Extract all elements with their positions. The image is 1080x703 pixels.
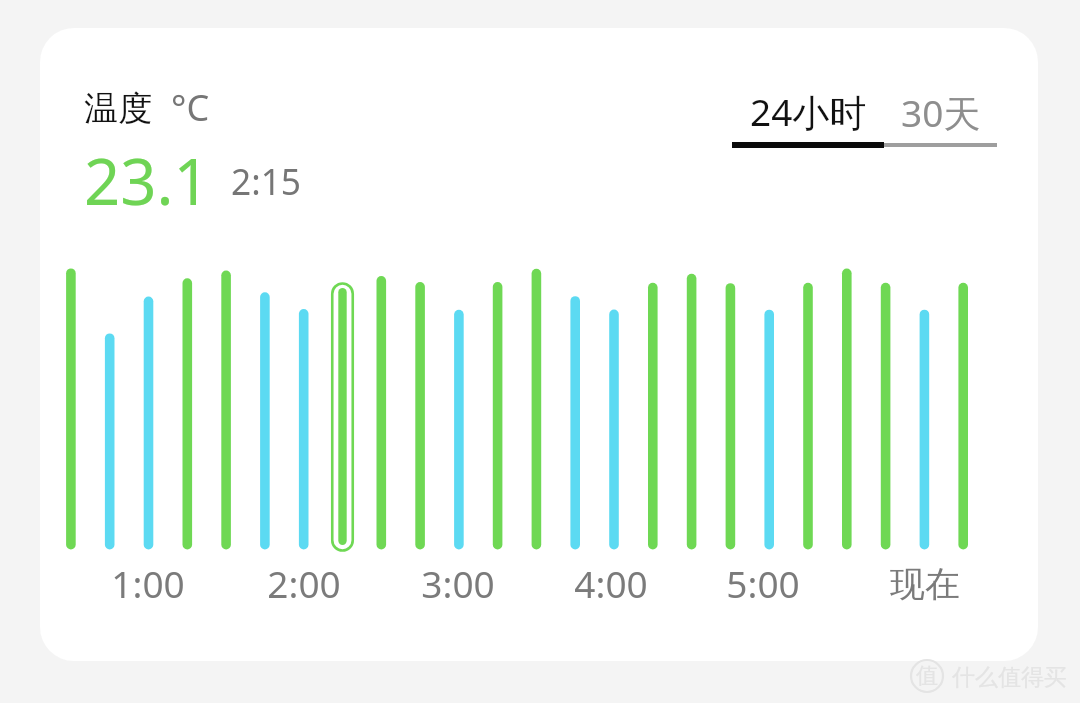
staticText: 24小时 <box>750 86 867 137</box>
button[interactable]: Temperature sample <box>324 262 362 554</box>
button[interactable]: Temperature sample <box>595 262 633 554</box>
button[interactable]: Temperature sample <box>285 262 323 554</box>
button[interactable]: Temperature sample <box>168 262 206 554</box>
button[interactable]: Temperature sample <box>750 262 788 554</box>
staticText: 2:00 <box>234 558 374 608</box>
button[interactable]: Temperature sample <box>556 262 594 554</box>
button[interactable]: Temperature sample <box>91 262 129 554</box>
button[interactable]: Temperature sample <box>517 262 555 554</box>
staticText: °C <box>171 83 210 132</box>
button[interactable]: Temperature sample <box>246 262 284 554</box>
staticText: 温度 <box>84 87 152 130</box>
staticText: 1:00 <box>78 558 218 608</box>
staticText: 30天 <box>901 87 981 138</box>
staticText: 什么值得买 <box>952 663 1067 692</box>
staticText: 23.1 <box>84 137 210 224</box>
button[interactable]: Temperature sample <box>828 262 866 554</box>
staticText: 2:15 <box>231 157 302 206</box>
button[interactable]: 30天 <box>884 86 997 148</box>
button[interactable]: Temperature sample <box>130 262 168 554</box>
button[interactable]: Temperature sample <box>867 262 905 554</box>
button[interactable]: Temperature sample <box>634 262 672 554</box>
button[interactable]: Temperature sample <box>905 262 943 554</box>
button[interactable]: Temperature sample <box>673 262 711 554</box>
button[interactable]: 24小时 <box>732 86 884 148</box>
staticText: 值 <box>916 662 938 690</box>
button[interactable]: Temperature sample <box>207 262 245 554</box>
button[interactable]: Temperature sample <box>944 262 982 554</box>
button[interactable]: Temperature sample <box>52 262 90 554</box>
button[interactable]: Temperature sample <box>789 262 827 554</box>
staticText: 5:00 <box>693 558 833 608</box>
staticText: 3:00 <box>388 558 528 608</box>
button[interactable]: Temperature sample <box>401 262 439 554</box>
button[interactable]: Temperature sample <box>479 262 517 554</box>
button[interactable]: Temperature sample <box>440 262 478 554</box>
staticText: 现在 <box>855 562 995 606</box>
button[interactable]: Temperature sample <box>711 262 749 554</box>
button[interactable]: Temperature sample <box>362 262 400 554</box>
staticText: 4:00 <box>541 558 681 608</box>
